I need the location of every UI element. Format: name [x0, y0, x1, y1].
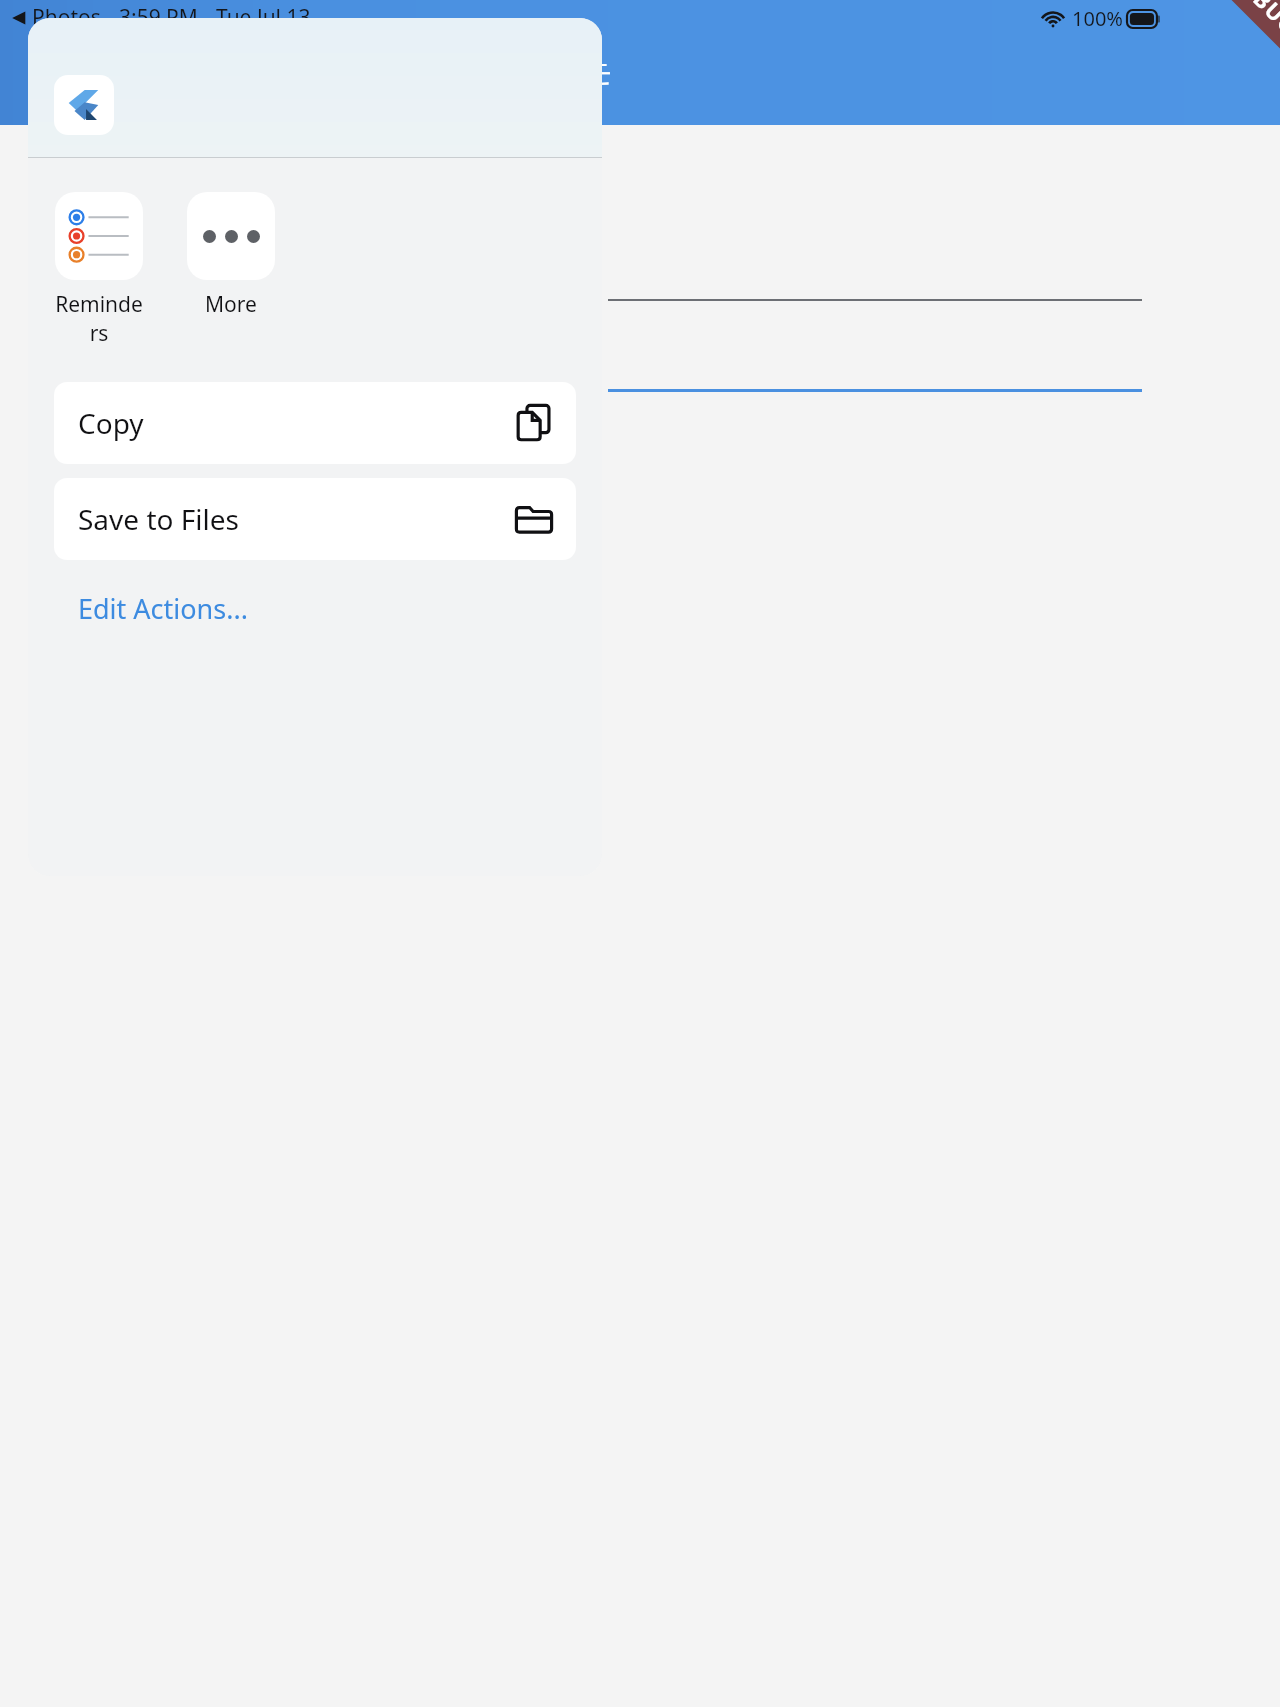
button[interactable]: Save to Files [54, 478, 576, 560]
button[interactable]: Reminders [54, 192, 144, 348]
button[interactable]: Edit Actions... [28, 586, 602, 637]
staticText: Copy [78, 404, 144, 442]
button[interactable]: More [186, 192, 276, 319]
button[interactable]: Copy [54, 382, 576, 464]
staticText: Reminders [54, 290, 144, 348]
staticText: Save to Files [78, 500, 239, 538]
staticText: Login デモ [470, 52, 613, 92]
staticText: More [205, 290, 257, 319]
staticText: Tue Jul 13 [216, 3, 311, 32]
other: Save to Files [512, 497, 556, 541]
staticText: Edit Actions... [78, 590, 248, 627]
staticText: DEBUG [1226, 0, 1280, 41]
staticText: 100% [1072, 5, 1123, 32]
staticText: Photos [32, 3, 101, 32]
staticText: 3:59 PM [119, 3, 198, 32]
other: Copy [512, 401, 556, 445]
